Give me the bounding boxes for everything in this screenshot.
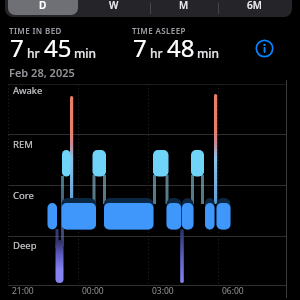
button[interactable]: 6M — [218, 0, 290, 15]
button[interactable]: D — [8, 0, 78, 15]
staticText: D — [39, 0, 47, 12]
staticText: min — [197, 45, 220, 61]
staticText: 03:00 — [152, 285, 174, 297]
staticText: W — [109, 0, 119, 12]
button[interactable]: M — [150, 0, 218, 15]
staticText: 21:00 — [12, 285, 34, 297]
staticText: min — [74, 45, 97, 61]
button[interactable]: W — [78, 0, 150, 15]
staticText: TIME IN BED — [9, 25, 62, 36]
staticText: 06:00 — [222, 285, 244, 297]
staticText: hr — [27, 45, 40, 61]
staticText: REM — [13, 138, 33, 151]
staticText: 7 — [133, 31, 147, 64]
staticText: hr — [150, 45, 163, 61]
staticText: 45 — [44, 31, 72, 64]
staticText: 6M — [247, 0, 262, 12]
staticText: 48 — [167, 31, 195, 64]
staticText: Awake — [13, 84, 43, 97]
staticText: TIME ASLEEP — [132, 25, 186, 36]
staticText: 7 — [10, 31, 24, 64]
button[interactable] — [256, 40, 274, 58]
staticText: Feb 28, 2025 — [9, 65, 75, 80]
staticText: M — [179, 0, 189, 12]
staticText: Deep — [13, 239, 37, 252]
staticText: 00:00 — [82, 285, 104, 297]
staticText: Core — [13, 189, 34, 202]
